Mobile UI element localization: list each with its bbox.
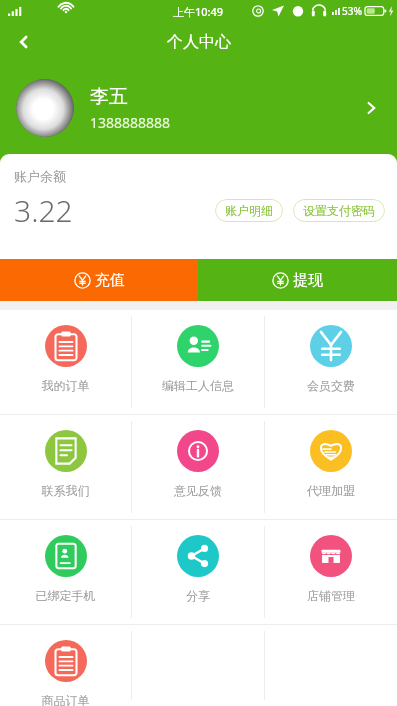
staticText: 账户明细 — [225, 203, 273, 218]
button[interactable]: 意见反馈 — [132, 415, 264, 519]
staticText: 店铺管理 — [265, 588, 397, 603]
staticText: 分享 — [132, 588, 264, 603]
staticText: 代理加盟 — [265, 483, 397, 498]
button[interactable]: 联系我们 — [0, 415, 131, 519]
button[interactable]: 我的订单 — [0, 310, 131, 414]
staticText: 1388888888 — [90, 113, 171, 132]
staticText: 商品订单 — [0, 693, 131, 706]
button[interactable]: 设置支付密码 — [293, 199, 385, 222]
staticText: 个人中心 — [167, 32, 231, 52]
staticText: 联系我们 — [0, 483, 131, 498]
button[interactable]: 账户明细 — [215, 199, 283, 222]
staticText: 李五 — [90, 85, 128, 109]
button[interactable]: 会员交费 — [265, 310, 397, 414]
button[interactable]: Back — [6, 24, 42, 60]
button[interactable]: 商品订单 — [0, 625, 131, 706]
staticText: 充值 — [95, 271, 125, 290]
button[interactable]: 已绑定手机 — [0, 520, 131, 624]
staticText: 3.22 — [14, 190, 73, 231]
staticText: 上午10:49 — [173, 4, 224, 19]
button[interactable]: 店铺管理 — [265, 520, 397, 624]
staticText: 提现 — [293, 271, 323, 290]
button[interactable]: 提现 — [198, 259, 397, 301]
staticText: 编辑工人信息 — [132, 378, 264, 393]
button[interactable]: 分享 — [132, 520, 264, 624]
button[interactable]: 李五 — [0, 62, 397, 154]
staticText: 会员交费 — [265, 378, 397, 393]
staticText: 账户余额 — [14, 168, 66, 184]
staticText: 已绑定手机 — [0, 588, 131, 603]
button[interactable]: 代理加盟 — [265, 415, 397, 519]
staticText: 意见反馈 — [132, 483, 264, 498]
button[interactable]: 编辑工人信息 — [132, 310, 264, 414]
staticText: 设置支付密码 — [303, 203, 375, 218]
button[interactable]: 充值 — [0, 259, 198, 301]
staticText: 我的订单 — [0, 378, 131, 393]
staticText: 53% — [342, 4, 362, 18]
